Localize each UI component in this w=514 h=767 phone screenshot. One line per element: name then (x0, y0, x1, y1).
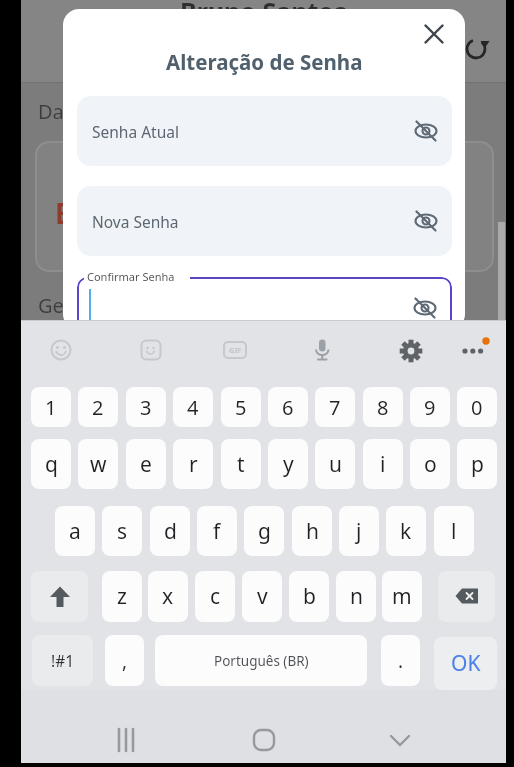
staticText: i (380, 450, 386, 479)
staticText: r (189, 450, 198, 479)
button[interactable] (387, 727, 413, 753)
staticText: 4 (187, 394, 199, 421)
button[interactable]: 4 (173, 387, 213, 427)
button[interactable] (48, 337, 74, 363)
button[interactable]: t (221, 439, 261, 489)
staticText: GIF (229, 345, 242, 355)
button[interactable]: 8 (363, 387, 403, 427)
staticText: q (45, 450, 58, 479)
button[interactable]: n (336, 571, 376, 622)
button[interactable]: u (315, 439, 355, 489)
staticText: Nova Senha (92, 211, 179, 232)
staticText: Gerais (38, 292, 98, 319)
button[interactable]: d (150, 506, 190, 556)
staticText: 1 (45, 394, 57, 421)
button[interactable]: o (410, 439, 450, 489)
button[interactable]: 9 (410, 387, 450, 427)
button[interactable] (438, 571, 495, 622)
button[interactable]: 7 (315, 387, 355, 427)
staticText: Bruno Santos (180, 0, 347, 28)
staticText: n (350, 582, 363, 611)
button[interactable]: p (457, 439, 497, 489)
button[interactable] (138, 337, 164, 363)
button[interactable]: 1 (31, 387, 71, 427)
button[interactable]: f (197, 506, 237, 556)
staticText: Alteração de Senha (166, 48, 363, 76)
staticText: 0 (471, 394, 483, 421)
staticText: 8 (377, 394, 389, 421)
staticText: e (140, 450, 152, 479)
staticText: 3 (140, 394, 152, 421)
staticText: k (400, 517, 412, 546)
button[interactable] (309, 337, 335, 363)
button[interactable]: b (289, 571, 329, 622)
button[interactable]: 2 (78, 387, 118, 427)
staticText: p (471, 450, 484, 479)
button[interactable]: c (195, 571, 235, 622)
button[interactable] (459, 337, 489, 367)
staticText: x (162, 582, 174, 611)
staticText: z (117, 582, 127, 611)
button[interactable]: a (55, 506, 95, 556)
staticText: s (117, 517, 128, 546)
staticText: 2 (92, 394, 104, 421)
button[interactable] (31, 571, 88, 622)
button[interactable]: . (381, 635, 420, 686)
button[interactable]: OK (434, 637, 497, 690)
staticText: g (258, 517, 271, 546)
staticText: v (257, 582, 268, 611)
button[interactable]: 6 (268, 387, 308, 427)
staticText: Português (BR) (214, 652, 309, 670)
button[interactable]: GIF (222, 337, 248, 363)
button[interactable] (398, 338, 424, 364)
staticText: y (283, 450, 294, 479)
staticText: m (392, 582, 412, 611)
button[interactable]: Português (BR) (155, 635, 367, 686)
button[interactable] (465, 38, 487, 60)
button[interactable]: i (363, 439, 403, 489)
button[interactable]: !#1 (32, 635, 93, 686)
button[interactable]: 3 (126, 387, 166, 427)
staticText: !#1 (51, 650, 75, 671)
button[interactable]: g (244, 506, 284, 556)
button[interactable] (77, 277, 452, 330)
staticText: a (69, 517, 81, 546)
button[interactable] (417, 17, 451, 51)
staticText: 6 (282, 394, 294, 421)
button[interactable] (251, 727, 277, 753)
button[interactable]: e (126, 439, 166, 489)
staticText: f (213, 517, 221, 546)
staticText: Dados (38, 98, 98, 125)
button[interactable]: x (148, 571, 188, 622)
button[interactable]: r (173, 439, 213, 489)
button[interactable]: 5 (221, 387, 261, 427)
button[interactable]: l (434, 506, 474, 556)
button[interactable]: 0 (457, 387, 497, 427)
staticText: j (356, 517, 362, 546)
staticText: Confirmar Senha (87, 269, 175, 284)
button[interactable]: s (102, 506, 142, 556)
button[interactable]: m (382, 571, 422, 622)
staticText: , (122, 648, 128, 674)
staticText: c (210, 582, 221, 611)
button[interactable]: z (102, 571, 142, 622)
staticText: B (55, 194, 74, 232)
staticText: 9 (424, 394, 436, 421)
staticText: 7 (329, 394, 341, 421)
button[interactable]: h (292, 506, 332, 556)
button[interactable]: j (339, 506, 379, 556)
staticText: d (164, 517, 177, 546)
staticText: h (306, 517, 319, 546)
button[interactable] (114, 726, 142, 754)
button[interactable]: y (268, 439, 308, 489)
button[interactable]: v (242, 571, 282, 622)
button[interactable]: , (105, 635, 144, 686)
button[interactable]: Nova Senha (77, 186, 452, 256)
staticText: 5 (235, 394, 247, 421)
staticText: l (451, 517, 457, 546)
button[interactable]: q (31, 439, 71, 489)
staticText: . (398, 648, 404, 674)
button[interactable]: w (78, 439, 118, 489)
button[interactable]: k (386, 506, 426, 556)
button[interactable]: Senha Atual (77, 96, 452, 166)
